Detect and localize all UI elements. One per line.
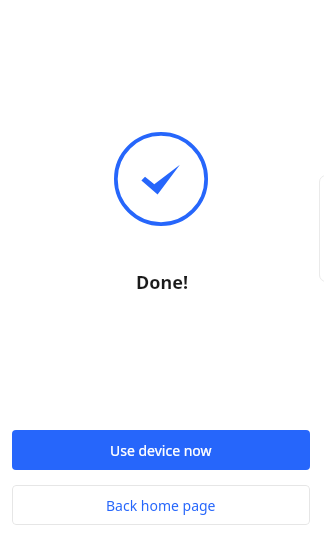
other: Success [114, 132, 208, 226]
button[interactable]: Back home page [12, 485, 310, 525]
staticText: Use device now [110, 441, 212, 460]
staticText: Back home page [106, 496, 216, 515]
staticText: Done! [0, 270, 324, 295]
button[interactable]: Use device now [12, 430, 310, 470]
